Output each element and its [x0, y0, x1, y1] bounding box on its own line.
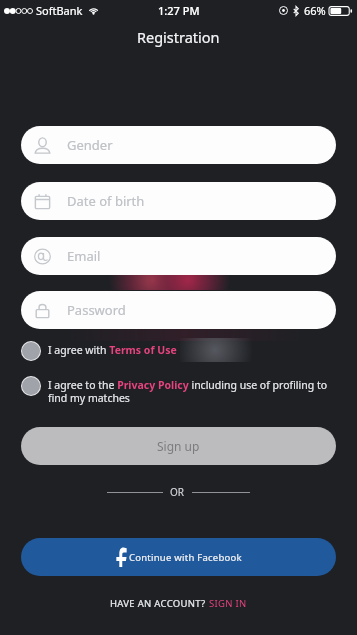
- staticText: Password: [67, 301, 126, 319]
- staticText: HAVE AN ACCOUNT?: [110, 597, 209, 610]
- staticText: Email: [67, 247, 101, 265]
- staticText: I agree with Terms of Use: [48, 343, 177, 357]
- staticText: SoftBank: [36, 3, 83, 18]
- staticText: OR: [170, 485, 185, 499]
- staticText: Gender: [67, 136, 113, 154]
- button[interactable]: Sign up: [21, 427, 336, 465]
- button[interactable]: SIGN IN: [209, 597, 247, 610]
- button[interactable]: Date of birth: [21, 182, 336, 220]
- button[interactable]: Password: [21, 291, 336, 329]
- staticText: Registration: [137, 27, 220, 47]
- staticText: 1:27 PM: [158, 3, 200, 18]
- button[interactable]: Email: [21, 237, 336, 275]
- staticText: Continue with Facebook: [129, 551, 242, 564]
- button[interactable]: I agree to the Privacy Policy including …: [21, 376, 336, 405]
- staticText: 66%: [304, 3, 326, 18]
- button[interactable]: Continue with Facebook: [21, 538, 336, 576]
- staticText: SIGN IN: [209, 597, 247, 610]
- staticText: I agree to the Privacy Policy including …: [48, 378, 336, 405]
- staticText: Sign up: [157, 438, 200, 454]
- button[interactable]: Gender: [21, 126, 336, 164]
- staticText: Date of birth: [67, 192, 145, 210]
- button[interactable]: I agree with Terms of Use: [21, 341, 336, 361]
